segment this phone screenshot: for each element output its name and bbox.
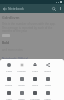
button[interactable]: Share [41,59,54,73]
button[interactable]: Keep [41,73,54,87]
staticText: Chrome [30,97,40,100]
button[interactable]: Files [2,87,15,100]
staticText: Gmail [5,83,12,86]
staticText: Print [32,69,38,72]
button[interactable]: Search [50,5,57,12]
staticText: More [44,97,51,100]
staticText: Keep [45,83,51,86]
staticText: sent from the editor [2,62,29,66]
button[interactable]: Print [28,59,41,73]
button[interactable]: More [41,87,54,100]
staticText: Share [44,69,51,72]
button[interactable]: Maps [15,87,28,100]
button[interactable]: Chrome [28,87,41,100]
staticText: Copy [6,69,12,72]
button[interactable]: More options [57,5,64,12]
button[interactable]: Navigate up [1,5,9,13]
staticText: Bold [2,41,10,45]
button[interactable]: Gmail [2,73,15,87]
button[interactable]: Drive [15,73,28,87]
button[interactable]: Docs [28,73,41,87]
staticText: Nearby [17,69,26,72]
staticText: Files [6,97,12,100]
staticText: Gdrdbvm [2,15,20,20]
staticText: Notebook [8,6,24,11]
staticText: Notebook: Official [2,57,28,61]
button[interactable]: Nearby Share [15,59,28,73]
staticText: Maps [18,97,25,100]
button[interactable]: Copy link [2,59,15,73]
staticText: Drive [18,83,25,86]
staticText: Docs [32,83,38,86]
